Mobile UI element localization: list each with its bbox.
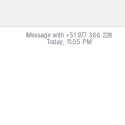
staticText: Today, 11:05 PM xyxy=(46,39,91,46)
staticText: iMessage with +51 977 366 228 xyxy=(25,32,112,39)
